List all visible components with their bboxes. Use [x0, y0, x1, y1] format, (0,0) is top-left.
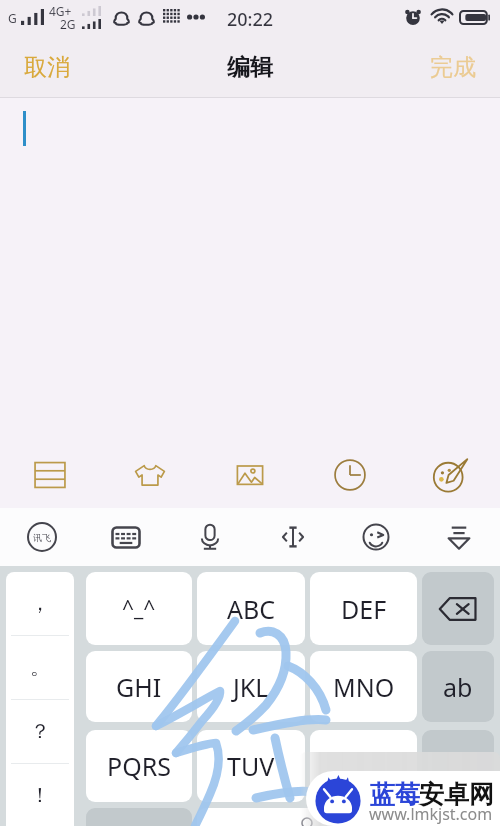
staticText: 编辑 — [227, 53, 273, 82]
staticText: 取消 — [24, 53, 70, 82]
staticText: ^_^ — [122, 594, 156, 623]
staticText: ， — [30, 591, 50, 616]
button[interactable]: Voice input — [168, 508, 251, 566]
button[interactable]: Space — [197, 808, 417, 826]
staticText: PQRS — [107, 749, 171, 783]
staticText: TUV — [227, 749, 275, 783]
staticText: MNO — [333, 670, 395, 704]
staticText: ！ — [30, 783, 50, 808]
button[interactable]: DEF — [310, 572, 417, 645]
staticText: GHI — [116, 670, 162, 704]
button[interactable] — [310, 730, 417, 802]
button[interactable]: 取消 — [6, 36, 88, 98]
staticText: JKL — [233, 670, 269, 704]
button[interactable]: Clothing — [100, 442, 200, 508]
button[interactable]: Enter — [422, 808, 494, 826]
staticText: G — [8, 10, 17, 26]
button[interactable]: JKL — [197, 651, 305, 722]
button[interactable]: 。 — [6, 636, 74, 699]
button[interactable]: ^_^ — [86, 572, 192, 645]
button[interactable]: Keyboard layout — [84, 508, 168, 566]
staticText: ？ — [30, 719, 50, 744]
button[interactable]: ， — [6, 572, 74, 635]
button[interactable]: Move cursor — [251, 508, 334, 566]
staticText: 。 — [30, 655, 50, 680]
button[interactable]: ab — [422, 651, 494, 722]
button[interactable]: ABC — [197, 572, 305, 645]
button[interactable]: Time — [300, 442, 400, 508]
button[interactable]: Backspace — [422, 572, 494, 645]
staticText: 安卓网 — [419, 779, 494, 810]
button[interactable]: MNO — [310, 651, 417, 722]
button[interactable]: Text format — [0, 442, 100, 508]
staticText: 4G+ — [49, 3, 72, 19]
staticText: ab — [443, 670, 473, 704]
staticText: www.lmkjst.com — [369, 803, 493, 825]
staticText: 完成 — [430, 53, 476, 82]
button[interactable]: ！ — [6, 764, 74, 826]
staticText: 20:22 — [227, 7, 274, 32]
button[interactable]: PQRS — [86, 730, 192, 802]
button[interactable]: GHI — [86, 651, 192, 722]
staticText: 2G — [60, 16, 76, 32]
staticText: ABC — [227, 592, 276, 626]
button[interactable]: Hide keyboard — [417, 508, 500, 566]
button[interactable]: Theme — [400, 442, 500, 508]
button[interactable]: Emoji — [334, 508, 417, 566]
button[interactable]: 完成 — [412, 36, 494, 98]
button[interactable]: ？ — [6, 700, 74, 763]
staticText: DEF — [341, 592, 387, 626]
staticText: 蓝莓 — [370, 779, 420, 810]
button[interactable] — [422, 730, 494, 802]
button[interactable]: Image — [200, 442, 300, 508]
staticText: 讯飞 — [33, 532, 51, 543]
button[interactable]: Input method — [0, 508, 84, 566]
button[interactable]: TUV — [197, 730, 305, 802]
